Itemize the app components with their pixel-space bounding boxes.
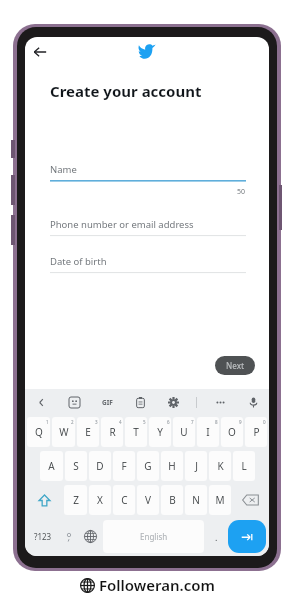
staticText: V — [145, 493, 151, 507]
button[interactable]: Voice input — [243, 392, 263, 412]
staticText: N — [192, 493, 200, 507]
button[interactable]: Change language — [81, 520, 99, 553]
button[interactable]: Name — [50, 163, 246, 201]
button[interactable]: ?123 — [28, 520, 57, 553]
button[interactable]: R — [101, 417, 123, 447]
staticText: I — [206, 425, 210, 439]
staticText: G — [144, 459, 152, 473]
staticText: S — [73, 459, 79, 473]
button[interactable]: C — [113, 485, 135, 515]
button[interactable]: Enter — [228, 520, 266, 553]
button[interactable]: Date of birth — [50, 255, 246, 281]
staticText: Name — [50, 163, 77, 176]
button[interactable]: Backspace — [234, 485, 266, 515]
button[interactable]: Phone number or email address — [50, 218, 246, 244]
button[interactable]: Shift — [28, 485, 61, 515]
staticText: C — [121, 493, 128, 507]
button[interactable]: Back — [29, 41, 51, 63]
staticText: U — [180, 425, 188, 439]
button[interactable]: English — [103, 520, 204, 553]
button[interactable]: F — [113, 451, 135, 481]
staticText: W — [59, 425, 69, 439]
button[interactable]: L — [233, 451, 255, 481]
staticText: X — [97, 493, 103, 507]
staticText: P — [253, 425, 260, 439]
staticText: ?123 — [34, 531, 52, 542]
staticText: 0 — [263, 419, 266, 425]
staticText: Followeran.com — [99, 575, 215, 595]
staticText: J — [195, 459, 198, 473]
staticText: 5 — [143, 419, 146, 425]
staticText: O — [228, 425, 236, 439]
button[interactable]: Previous — [31, 392, 51, 412]
button[interactable]: X — [89, 485, 111, 515]
button[interactable]: B — [161, 485, 183, 515]
staticText: L — [241, 459, 247, 473]
staticText: Y — [157, 425, 163, 439]
staticText: . — [215, 531, 218, 543]
button[interactable]: V — [137, 485, 159, 515]
staticText: 9 — [239, 419, 242, 425]
staticText: K — [217, 459, 224, 473]
staticText: R — [109, 425, 116, 439]
button[interactable]: Period — [208, 520, 224, 553]
staticText: 6 — [167, 419, 170, 425]
staticText: F — [121, 459, 127, 473]
button[interactable]: J — [185, 451, 207, 481]
button[interactable]: Next — [215, 356, 255, 375]
staticText: Q — [35, 425, 43, 439]
button[interactable]: I — [197, 417, 219, 447]
staticText: 2 — [71, 419, 74, 425]
button[interactable]: A — [40, 451, 63, 481]
button[interactable]: Clipboard — [130, 392, 150, 412]
button[interactable]: W — [52, 417, 75, 447]
staticText: A — [48, 459, 55, 473]
staticText: E — [85, 425, 91, 439]
staticText: M — [215, 493, 225, 507]
button[interactable]: N — [185, 485, 207, 515]
button[interactable]: H — [161, 451, 183, 481]
staticText: 1 — [46, 419, 49, 425]
button[interactable]: More — [210, 392, 230, 412]
button[interactable]: M — [209, 485, 231, 515]
button[interactable]: O — [221, 417, 243, 447]
staticText: D — [96, 459, 104, 473]
button[interactable]: P — [245, 417, 267, 447]
staticText: 3 — [95, 419, 98, 425]
staticText: Create your account — [50, 81, 202, 101]
staticText: GIF — [102, 398, 113, 407]
button[interactable]: Settings — [163, 392, 183, 412]
staticText: Date of birth — [50, 255, 107, 268]
button[interactable]: E — [77, 417, 99, 447]
button[interactable]: T — [125, 417, 147, 447]
button[interactable]: Q — [27, 417, 50, 447]
button[interactable]: D — [89, 451, 111, 481]
staticText: B — [169, 493, 176, 507]
staticText: 50 — [237, 187, 246, 197]
staticText: T — [133, 425, 139, 439]
button[interactable]: Z — [64, 485, 87, 515]
staticText: English — [140, 531, 168, 542]
button[interactable]: G — [137, 451, 159, 481]
button[interactable]: Stickers — [64, 392, 84, 412]
button[interactable]: Emoji — [61, 520, 77, 553]
staticText: Phone number or email address — [50, 218, 194, 231]
button[interactable]: GIF — [97, 392, 117, 412]
staticText: 4 — [119, 419, 122, 425]
staticText: 7 — [191, 419, 194, 425]
staticText: 8 — [215, 419, 218, 425]
staticText: H — [168, 459, 176, 473]
button[interactable]: K — [209, 451, 231, 481]
staticText: Z — [73, 493, 79, 507]
button[interactable]: S — [65, 451, 87, 481]
staticText: Next — [226, 360, 245, 371]
button[interactable]: U — [173, 417, 195, 447]
button[interactable]: Y — [149, 417, 171, 447]
